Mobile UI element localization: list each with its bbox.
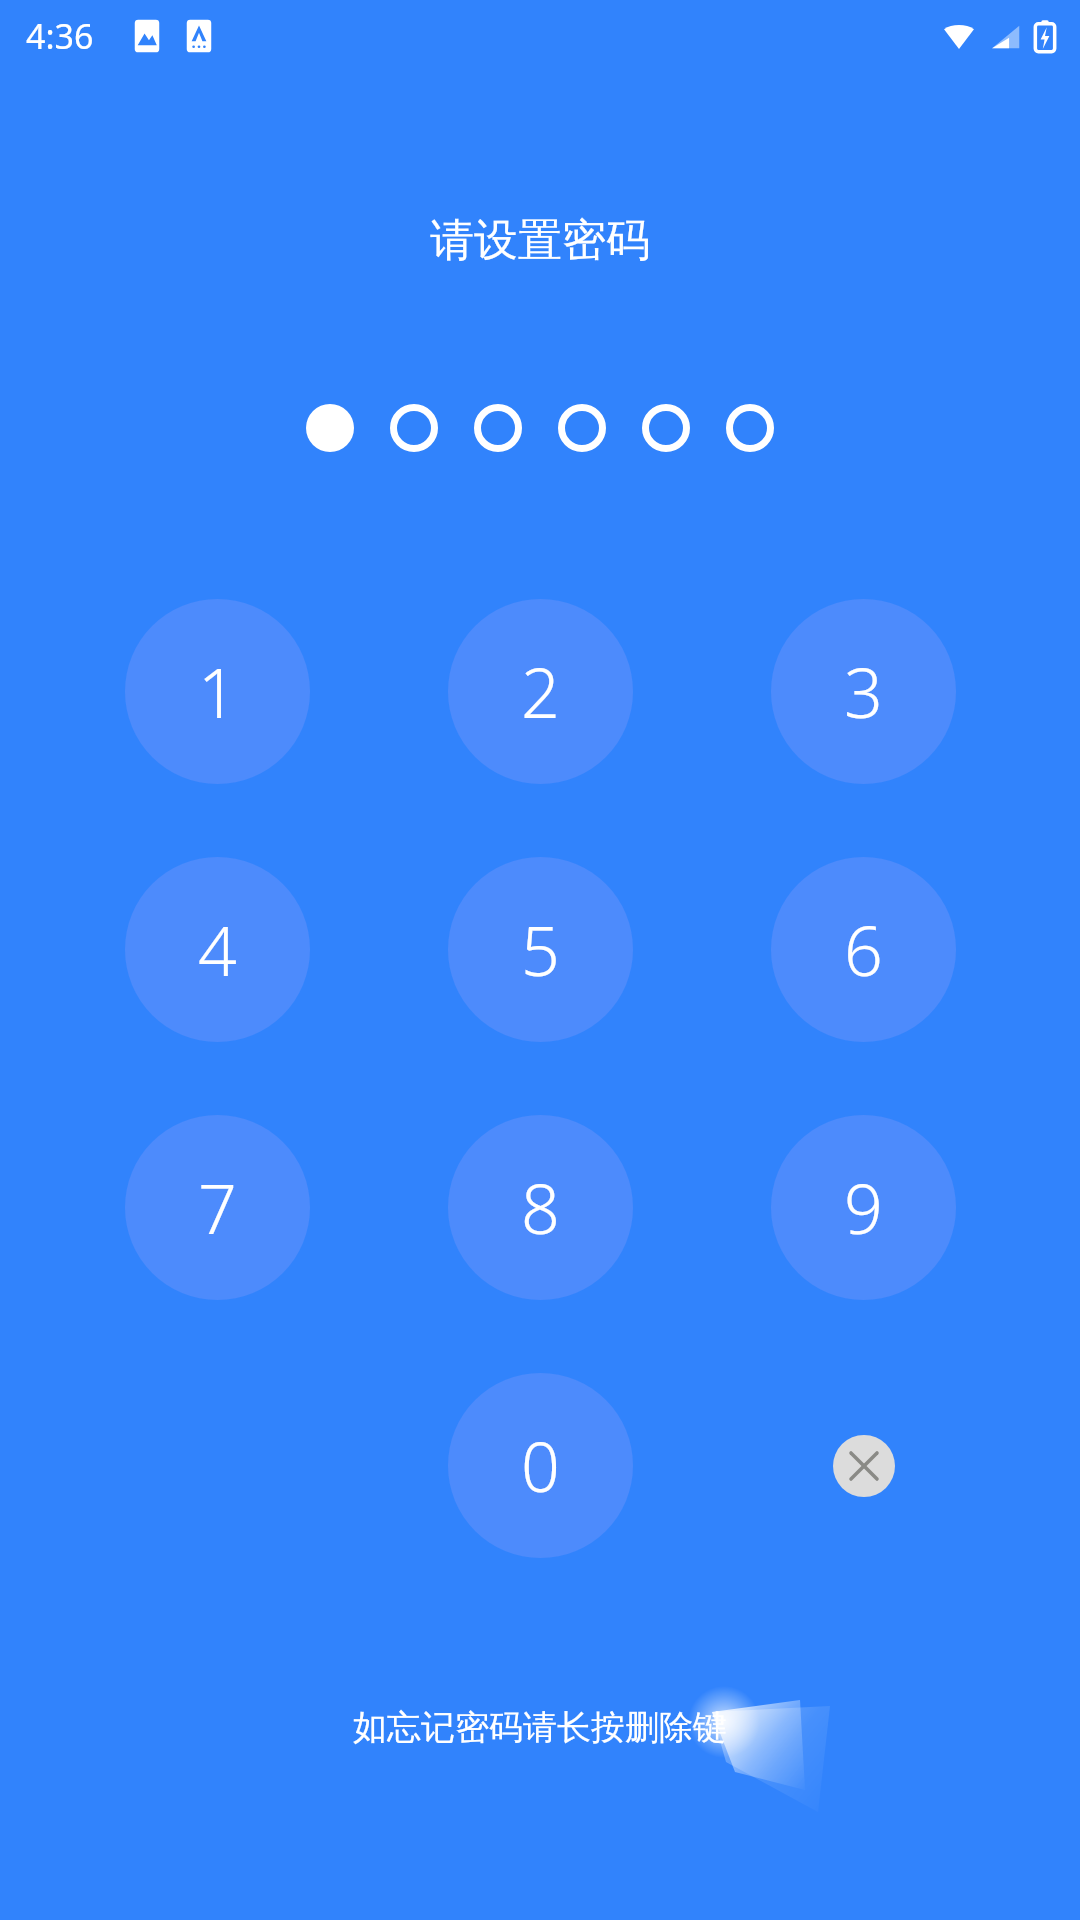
button[interactable]: 0: [448, 1373, 633, 1558]
staticText: 6: [844, 903, 883, 996]
button[interactable]: 8: [448, 1115, 633, 1300]
staticText: 4: [198, 903, 237, 996]
button[interactable]: 删除: [771, 1373, 956, 1558]
staticText: 0: [521, 1419, 560, 1512]
staticText: 9: [844, 1161, 883, 1254]
staticText: 4:36: [26, 13, 94, 59]
staticText: 1: [198, 645, 237, 738]
staticText: 8: [521, 1161, 560, 1254]
button[interactable]: 7: [125, 1115, 310, 1300]
button[interactable]: 5: [448, 857, 633, 1042]
button[interactable]: 3: [771, 599, 956, 784]
staticText: 如忘记密码请长按删除键: [353, 1706, 727, 1749]
staticText: 2: [521, 645, 560, 738]
button[interactable]: 1: [125, 599, 310, 784]
button[interactable]: 4: [125, 857, 310, 1042]
button[interactable]: 2: [448, 599, 633, 784]
staticText: 7: [198, 1161, 237, 1254]
button[interactable]: 9: [771, 1115, 956, 1300]
staticText: 请设置密码: [430, 213, 650, 268]
staticText: 5: [521, 903, 560, 996]
button[interactable]: 6: [771, 857, 956, 1042]
staticText: 3: [844, 645, 883, 738]
